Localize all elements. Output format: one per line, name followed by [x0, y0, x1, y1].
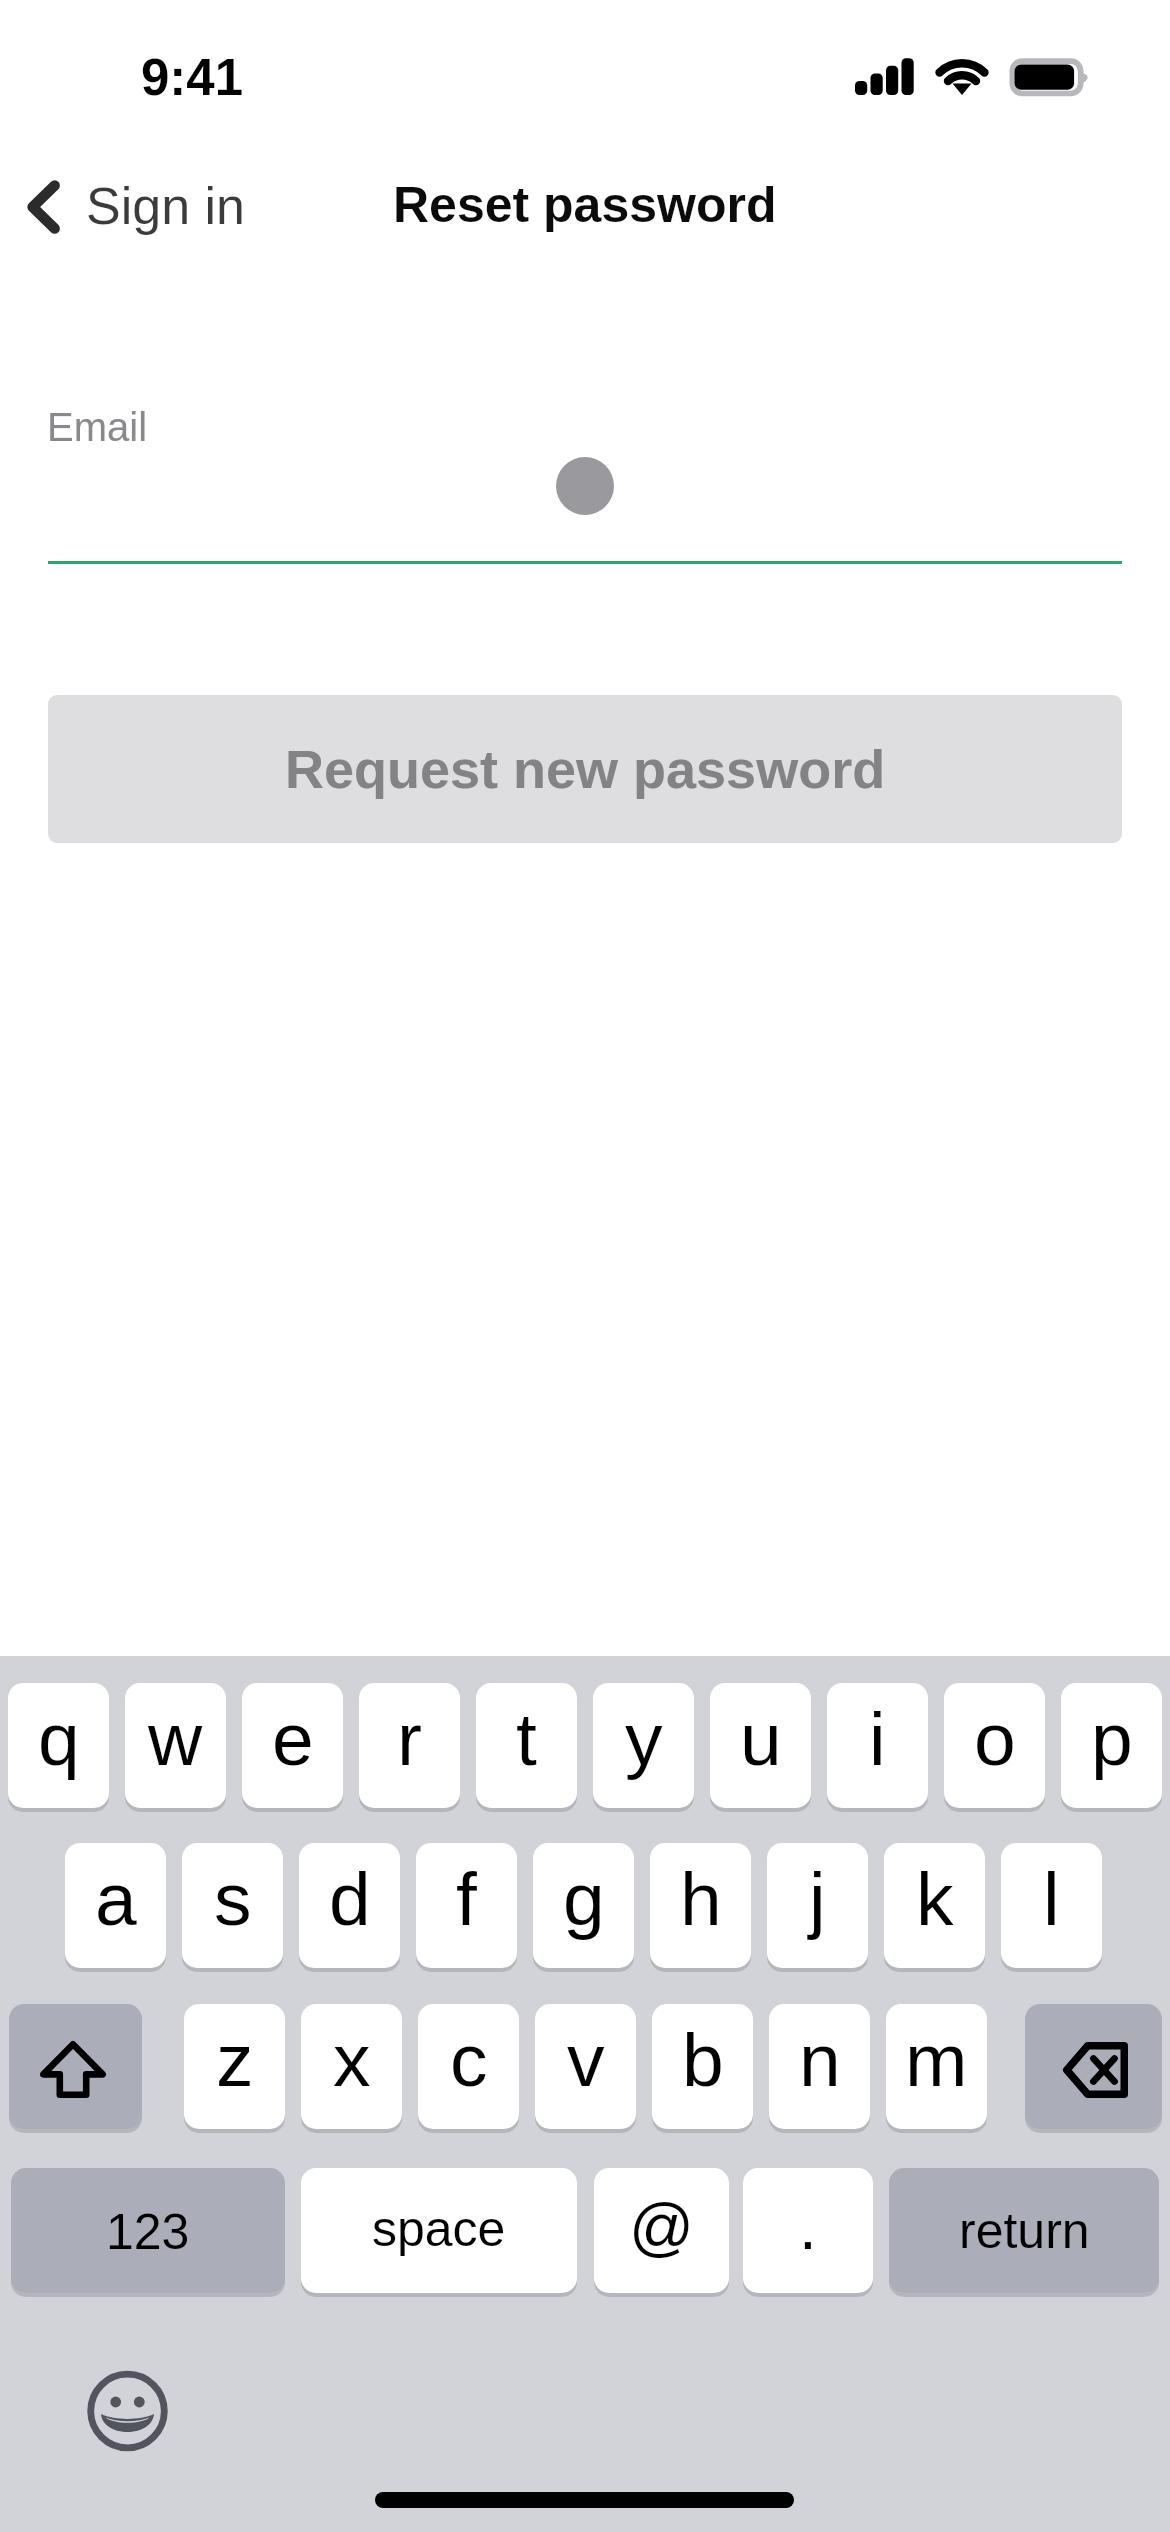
button[interactable]: e [242, 1683, 343, 1808]
button[interactable]: . [743, 2168, 873, 2293]
button[interactable]: s [182, 1843, 283, 1968]
staticText: o [974, 1697, 1016, 1781]
staticText: t [516, 1697, 537, 1781]
staticText: l [1043, 1857, 1060, 1941]
staticText: j [809, 1857, 826, 1941]
staticText: Email [47, 405, 148, 450]
button[interactable]: y [593, 1683, 694, 1808]
button[interactable]: Shift [9, 2004, 142, 2129]
staticText: g [563, 1857, 605, 1941]
button[interactable]: p [1061, 1683, 1162, 1808]
staticText: e [272, 1697, 314, 1781]
staticText: x [333, 2018, 371, 2102]
staticText: c [450, 2018, 488, 2102]
staticText: b [682, 2018, 724, 2102]
staticText: space [372, 2201, 506, 2257]
button[interactable]: Back to Sign in [8, 160, 260, 254]
staticText: p [1091, 1697, 1133, 1781]
staticText: m [905, 2018, 968, 2102]
staticText: 9:41 [141, 49, 244, 106]
button[interactable]: v [535, 2004, 636, 2129]
button[interactable]: r [359, 1683, 460, 1808]
button[interactable]: Emoji keyboard [84, 2368, 171, 2455]
button[interactable]: space [301, 2168, 577, 2293]
button[interactable]: j [767, 1843, 868, 1968]
button[interactable]: @ [594, 2168, 729, 2293]
staticText: d [329, 1857, 371, 1941]
button[interactable]: u [710, 1683, 811, 1808]
button[interactable]: w [125, 1683, 226, 1808]
button[interactable]: Request new password [48, 695, 1122, 843]
staticText: s [214, 1857, 252, 1941]
button[interactable]: t [476, 1683, 577, 1808]
button[interactable]: 123 [11, 2168, 285, 2293]
button[interactable]: n [769, 2004, 870, 2129]
button[interactable]: x [301, 2004, 402, 2129]
staticText: 123 [106, 2204, 190, 2260]
button[interactable]: m [886, 2004, 987, 2129]
button[interactable]: c [418, 2004, 519, 2129]
staticText: k [916, 1857, 954, 1941]
button[interactable]: l [1001, 1843, 1102, 1968]
staticText: f [456, 1857, 477, 1941]
staticText: Request new password [285, 739, 886, 799]
button[interactable]: g [533, 1843, 634, 1968]
staticText: r [397, 1697, 422, 1781]
staticText: . [799, 2191, 817, 2263]
button[interactable]: z [184, 2004, 285, 2129]
button[interactable]: o [944, 1683, 1045, 1808]
staticText: q [38, 1697, 80, 1781]
button[interactable]: f [416, 1843, 517, 1968]
staticText: w [148, 1697, 203, 1781]
button[interactable]: k [884, 1843, 985, 1968]
button[interactable]: Backspace [1025, 2004, 1162, 2129]
button[interactable]: b [652, 2004, 753, 2129]
staticText: a [95, 1857, 137, 1941]
staticText: v [567, 2018, 605, 2102]
staticText: h [680, 1857, 722, 1941]
staticText: return [959, 2203, 1090, 2259]
button[interactable]: return [889, 2168, 1159, 2293]
staticText: @ [629, 2191, 694, 2263]
staticText: u [740, 1697, 782, 1781]
button[interactable]: i [827, 1683, 928, 1808]
staticText: n [799, 2018, 841, 2102]
button[interactable]: q [8, 1683, 109, 1808]
button[interactable]: a [65, 1843, 166, 1968]
staticText: y [625, 1697, 663, 1781]
staticText: z [216, 2018, 254, 2102]
staticText: Sign in [86, 177, 245, 235]
staticText: Reset password [393, 177, 777, 233]
button[interactable]: d [299, 1843, 400, 1968]
staticText: i [869, 1697, 886, 1781]
button[interactable]: h [650, 1843, 751, 1968]
